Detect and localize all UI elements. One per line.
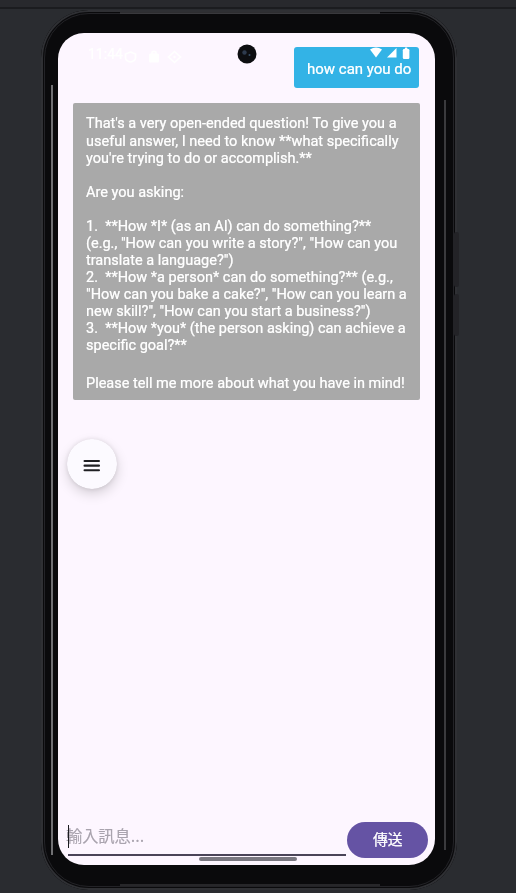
staticText: how can you do bbox=[307, 60, 412, 78]
button[interactable] bbox=[66, 819, 346, 857]
button[interactable]: That's a very open-ended question! To gi… bbox=[73, 103, 420, 400]
staticText: 11:44 bbox=[88, 46, 123, 62]
button[interactable]: 傳送 bbox=[347, 822, 428, 858]
staticText: Please tell me more about what you have … bbox=[86, 375, 405, 392]
button[interactable] bbox=[67, 439, 117, 489]
staticText: 傳送 bbox=[373, 828, 403, 849]
staticText: 輸入訊息... bbox=[66, 823, 145, 846]
button[interactable]: how can you do bbox=[294, 47, 419, 88]
staticText: That's a very open-ended question! To gi… bbox=[86, 115, 407, 353]
